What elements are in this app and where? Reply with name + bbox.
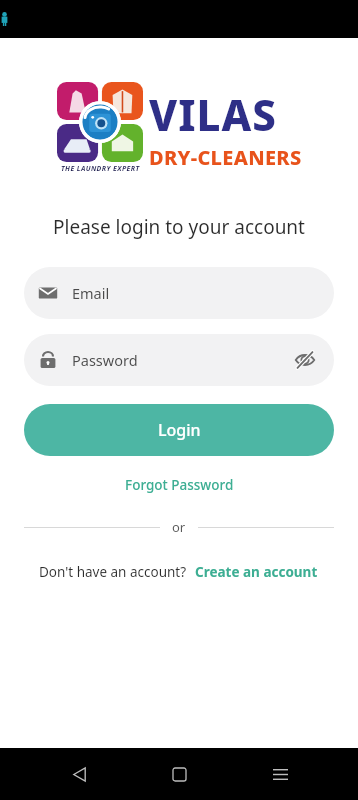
staticText: Don't have an account? bbox=[39, 563, 187, 581]
button[interactable]: Password bbox=[24, 334, 334, 386]
staticText: or bbox=[172, 518, 186, 536]
button[interactable]: Forgot Password bbox=[117, 473, 242, 497]
button[interactable]: Recent apps bbox=[258, 752, 302, 796]
staticText: Email bbox=[72, 283, 318, 303]
button[interactable]: Create an account bbox=[193, 560, 320, 584]
staticText: Password bbox=[72, 350, 292, 370]
staticText: THE LAUNDRY EXPERT bbox=[61, 164, 140, 174]
button[interactable]: Show password bbox=[292, 347, 318, 373]
button[interactable]: Back bbox=[57, 752, 101, 796]
button[interactable]: Home bbox=[157, 752, 201, 796]
button[interactable]: Email bbox=[24, 267, 334, 319]
button[interactable]: Login bbox=[24, 404, 334, 456]
staticText: Create an account bbox=[195, 563, 318, 581]
staticText: Forgot Password bbox=[125, 476, 234, 494]
staticText: Login bbox=[158, 419, 201, 441]
staticText: DRY-CLEANERS bbox=[149, 144, 302, 171]
staticText: Please login to your account bbox=[53, 214, 305, 240]
staticText: VILAS bbox=[149, 86, 277, 143]
